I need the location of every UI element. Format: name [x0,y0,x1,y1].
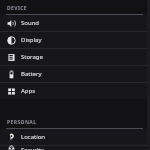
button[interactable]: Storage [0,49,150,65]
button[interactable]: Apps [0,83,150,99]
staticText: DEVICE [7,5,28,12]
staticText: Storage [21,53,43,61]
button[interactable]: Display [0,32,150,48]
button[interactable]: Battery [0,66,150,82]
staticText: Display [21,36,42,44]
staticText: PERSONAL [7,119,37,126]
button[interactable]: Location [0,129,150,145]
staticText: Sound [21,19,40,27]
button[interactable]: Sound [0,15,150,31]
staticText: Location [21,133,46,141]
staticText: Security [21,146,44,150]
staticText: Apps [21,87,36,95]
button[interactable]: Security [0,146,150,150]
staticText: Battery [21,70,42,78]
